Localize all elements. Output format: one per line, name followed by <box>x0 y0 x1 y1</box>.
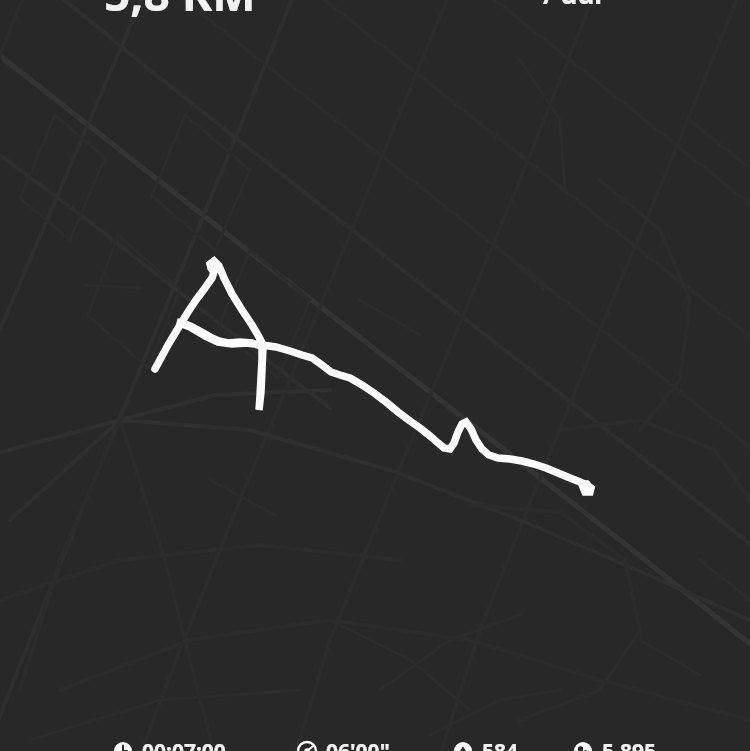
button[interactable]: Run activity map <box>0 0 750 751</box>
